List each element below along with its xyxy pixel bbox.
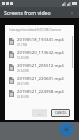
staticText: 20190521_220601.mp4 (17, 75, 64, 81)
staticText: CANCEL (55, 111, 67, 115)
button[interactable]: 20190520_173632.mp4 (5, 48, 74, 61)
staticText: ... (38, 111, 41, 116)
staticText: 20190521_205512.mp4 (17, 62, 64, 68)
button[interactable]: Add (59, 122, 74, 137)
staticText: 20190521_224958.mp4 (17, 88, 64, 94)
button[interactable]: More options (69, 10, 75, 16)
staticText: 26.85 MB (17, 95, 29, 99)
staticText: 47.7 MB (17, 43, 28, 47)
button[interactable]: 20190521_224958.mp4 (5, 87, 74, 100)
button[interactable]: CANCEL (51, 109, 70, 117)
staticText: 25.24 MB (17, 69, 29, 73)
staticText: 28.01 MB (17, 82, 29, 86)
staticText: 15.83 MB (17, 56, 29, 60)
staticText: Screens from video (4, 9, 51, 16)
button[interactable]: 20190521_220601.mp4 (5, 74, 74, 87)
button[interactable]: 20190521_205512.mp4 (5, 61, 74, 74)
button[interactable]: 20190518_193341.mp4 (5, 35, 74, 48)
staticText: 20190518_193341.mp4 (17, 36, 64, 42)
staticText: 20190520_173632.mp4 (17, 49, 64, 55)
button[interactable]: ... (32, 109, 47, 117)
staticText: /storage/emulated/0/DCIM/Camera (9, 28, 61, 32)
